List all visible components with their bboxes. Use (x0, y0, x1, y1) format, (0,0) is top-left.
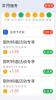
staticText: 购物 (39, 18, 45, 21)
button[interactable]: 立即还 (43, 30, 53, 34)
staticText: 限时特惠活动专享 (3, 79, 35, 84)
button[interactable]: 生活 (24, 12, 31, 21)
staticText: ￥5.00 (9, 50, 19, 54)
staticText: 医疗 (18, 18, 24, 21)
staticText: 出行 (11, 18, 17, 21)
button[interactable]: 购物 (38, 12, 45, 21)
button[interactable]: 限时特惠活动专享 (1, 57, 55, 76)
button[interactable]: 限时特惠活动专享 (1, 77, 55, 95)
staticText: 多重好礼等你来拿 (3, 85, 27, 88)
staticText: 去使用 (43, 89, 52, 93)
button[interactable]: 医疗 (17, 12, 24, 21)
button[interactable]: 领福利 (44, 3, 54, 8)
button[interactable]: 限时特惠活动专享 (1, 38, 55, 56)
staticText: 立即还 (43, 30, 52, 34)
button[interactable]: 理财 (31, 12, 38, 21)
staticText: 领福利 (44, 4, 53, 7)
staticText: 去使用 (43, 70, 52, 73)
button[interactable]: 去使用 (43, 50, 53, 54)
staticText: 去使用 (43, 50, 52, 54)
button[interactable]: 去使用 (43, 69, 53, 74)
staticText: 信用卡还款 (10, 30, 25, 34)
button[interactable]: 更多 (45, 12, 52, 21)
button[interactable]: 出行 (10, 12, 17, 21)
staticText: 多重好礼等你来拿 (3, 45, 27, 49)
staticText: ￥5.00 (9, 70, 19, 73)
staticText: 限时特惠活动专享 (3, 40, 35, 44)
staticText: 常用服务 (2, 3, 18, 8)
staticText: 理财 (32, 18, 38, 21)
button[interactable]: 话费 (3, 12, 10, 21)
staticText: 话费 (4, 18, 10, 21)
button[interactable]: 信用卡还款 (1, 28, 55, 37)
staticText: 更多 (46, 18, 52, 21)
staticText: 生活 (25, 18, 31, 21)
staticText: ￥5.00 (9, 89, 19, 93)
staticText: 限时特惠活动专享 (3, 59, 35, 64)
staticText: 多重好礼等你来拿 (3, 65, 27, 68)
button[interactable]: 去使用 (43, 89, 53, 93)
